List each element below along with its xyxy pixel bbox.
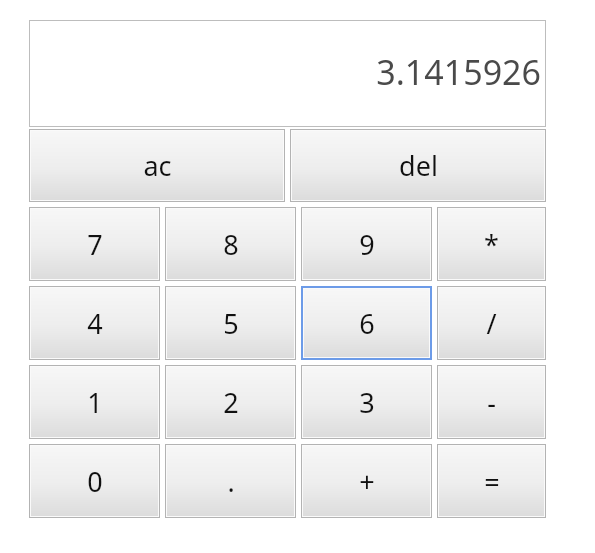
staticText: 0 (87, 463, 103, 500)
button[interactable]: 4 (29, 286, 160, 360)
staticText: = (484, 463, 500, 500)
button[interactable]: 5 (165, 286, 296, 360)
staticText: 1 (87, 384, 103, 421)
staticText: 3.1415926 (376, 49, 541, 95)
staticText: 2 (223, 384, 239, 421)
button[interactable]: = (437, 444, 546, 518)
staticText: + (359, 463, 375, 500)
staticText: / (486, 305, 497, 342)
button[interactable]: 2 (165, 365, 296, 439)
button[interactable]: Display (29, 20, 546, 127)
button[interactable]: 8 (165, 207, 296, 281)
staticText: ac (143, 147, 172, 184)
staticText: 3 (359, 384, 375, 421)
button[interactable]: 0 (29, 444, 160, 518)
staticText: 9 (359, 226, 375, 263)
staticText: - (487, 384, 496, 421)
button[interactable]: . (165, 444, 296, 518)
button[interactable]: 7 (29, 207, 160, 281)
button[interactable]: 6 (301, 286, 432, 360)
staticText: 6 (359, 305, 375, 342)
staticText: del (399, 147, 438, 184)
button[interactable]: / (437, 286, 546, 360)
button[interactable]: * (437, 207, 546, 281)
button[interactable]: 1 (29, 365, 160, 439)
staticText: 4 (87, 305, 103, 342)
button[interactable]: 9 (301, 207, 432, 281)
button[interactable]: del (290, 129, 546, 202)
button[interactable]: ac (29, 129, 285, 202)
staticText: 5 (223, 305, 239, 342)
button[interactable]: 3 (301, 365, 432, 439)
staticText: * (484, 226, 499, 263)
staticText: 7 (87, 226, 103, 263)
staticText: . (227, 463, 235, 500)
button[interactable]: - (437, 365, 546, 439)
button[interactable]: + (301, 444, 432, 518)
staticText: 8 (223, 226, 239, 263)
